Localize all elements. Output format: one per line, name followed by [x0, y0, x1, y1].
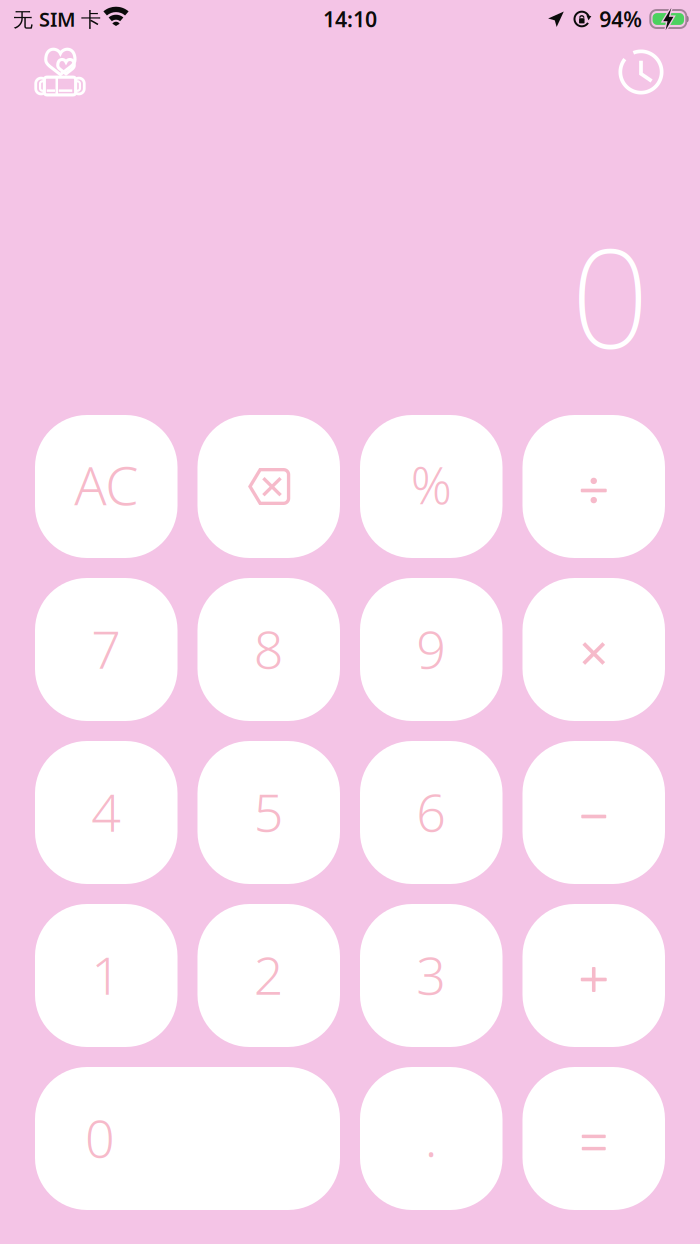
button[interactable]: Delete — [197, 415, 340, 558]
staticText: 无 SIM 卡 — [13, 6, 101, 32]
staticText: 2 — [254, 940, 284, 1009]
button[interactable]: 7 — [35, 578, 177, 721]
staticText: 5 — [254, 777, 284, 846]
button[interactable]: Divide — [522, 415, 665, 558]
staticText: 3 — [416, 940, 446, 1009]
button[interactable]: 8 — [197, 578, 340, 721]
staticText: 4 — [91, 777, 121, 846]
button[interactable]: 2 — [197, 904, 340, 1047]
staticText: 8 — [254, 614, 284, 683]
staticText: 0 — [571, 204, 649, 386]
staticText: 6 — [416, 777, 446, 846]
staticText: 7 — [91, 614, 121, 683]
staticText: 94% — [599, 5, 642, 33]
button[interactable]: Decimal point — [360, 1067, 502, 1210]
staticText: % — [411, 451, 452, 518]
button[interactable]: Minus — [522, 741, 665, 884]
button[interactable]: 4 — [35, 741, 177, 884]
button[interactable]: 9 — [360, 578, 502, 721]
staticText: . — [425, 1102, 438, 1171]
staticText: 9 — [416, 614, 446, 683]
button[interactable]: All clear — [35, 415, 177, 558]
staticText: 14:10 — [323, 5, 377, 33]
staticText: AC — [74, 449, 138, 520]
button[interactable]: 3 — [360, 904, 502, 1047]
button[interactable]: 6 — [360, 741, 502, 884]
button[interactable]: Plus — [522, 904, 665, 1047]
button[interactable]: Percent — [360, 415, 502, 558]
staticText: 1 — [91, 940, 121, 1009]
staticText: 0 — [85, 1103, 115, 1172]
button[interactable]: Equals — [522, 1067, 665, 1210]
button[interactable]: Multiply — [522, 578, 665, 721]
button[interactable]: 5 — [197, 741, 340, 884]
button[interactable]: Health — [25, 38, 91, 96]
button[interactable]: Zero — [35, 1067, 340, 1210]
button[interactable]: 1 — [35, 904, 177, 1047]
button[interactable]: History — [609, 38, 671, 96]
